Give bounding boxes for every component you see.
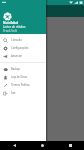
button[interactable]: Recents: [56, 141, 84, 150]
staticText: Leitor de rótulos: [3, 25, 26, 29]
button[interactable]: Backup: [0, 65, 46, 73]
button[interactable]: Configurações: [0, 44, 46, 52]
staticText: Sair: [11, 91, 16, 95]
staticText: Consulta: [11, 38, 22, 42]
button[interactable]: Termos Política: [0, 81, 46, 89]
staticText: Backup: [11, 67, 20, 71]
button[interactable]: Sair: [0, 89, 46, 97]
button[interactable]: Anunciar: [0, 52, 46, 60]
staticText: Anunciar: [11, 54, 22, 58]
button[interactable]: Loja de Dicas: [0, 73, 46, 81]
staticText: Nutrilabel: [3, 21, 19, 25]
staticText: Configurações: [11, 46, 29, 50]
staticText: Frank Soft: [3, 29, 17, 33]
button[interactable]: Consulta: [0, 36, 46, 44]
staticText: Termos Política: [11, 83, 30, 87]
button[interactable]: Back: [0, 141, 28, 150]
button[interactable]: Home: [28, 141, 56, 150]
staticText: Loja de Dicas: [11, 75, 27, 79]
